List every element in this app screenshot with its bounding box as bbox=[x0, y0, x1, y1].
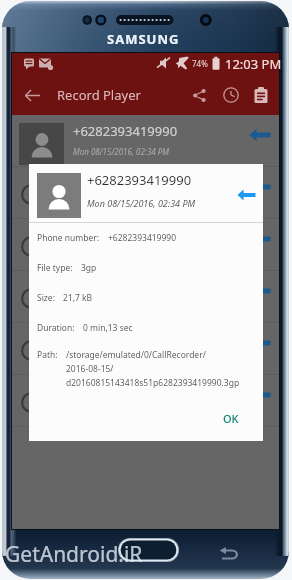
staticText: +6282393419990 bbox=[87, 171, 192, 189]
staticText: Mon 08/15/2016, 02:34 PM bbox=[87, 197, 196, 209]
staticText: 12:03 PM bbox=[225, 55, 282, 73]
button[interactable]: Incoming call bbox=[245, 228, 275, 250]
button[interactable]: Recordings list bbox=[245, 79, 277, 111]
button[interactable]: History bbox=[215, 79, 247, 111]
staticText: Record Player bbox=[57, 86, 141, 104]
staticText: OK bbox=[223, 411, 239, 426]
staticText: Mon 08/15/2016, 02:34 PM bbox=[73, 354, 170, 365]
staticText: /storage/emulated/0/CallRecorder/ bbox=[66, 349, 206, 361]
staticText: +6282393419990 bbox=[73, 174, 178, 192]
staticText: 74% bbox=[192, 58, 208, 69]
button[interactable]: Share bbox=[183, 79, 215, 111]
staticText: Duration: bbox=[37, 322, 75, 334]
staticText: 21,7 kB bbox=[63, 292, 93, 304]
staticText: Size: bbox=[37, 292, 55, 304]
button[interactable]: OK bbox=[211, 403, 251, 434]
button[interactable]: +6282393419990 bbox=[12, 375, 279, 427]
button[interactable]: Back bbox=[15, 78, 49, 112]
staticText: +6282393419990 bbox=[73, 226, 178, 244]
staticText: File type: bbox=[37, 262, 73, 274]
staticText: +6282393419990 bbox=[73, 330, 178, 348]
staticText: Mon 08/15/2016, 02:34 PM bbox=[73, 198, 170, 209]
staticText: GetAndroid.iR bbox=[5, 540, 143, 569]
staticText: +6282393419990 bbox=[73, 122, 178, 140]
staticText: Path: bbox=[37, 349, 58, 361]
button[interactable]: +6282393419990 bbox=[12, 219, 279, 271]
button[interactable]: +6282393419990 bbox=[12, 167, 279, 219]
button[interactable]: Incoming call bbox=[245, 280, 275, 302]
staticText: d20160815143418s51p6282393419990.3gp bbox=[66, 377, 240, 389]
button[interactable]: Incoming call bbox=[245, 124, 275, 146]
button[interactable]: Incoming call bbox=[245, 176, 275, 198]
button[interactable]: Incoming call bbox=[245, 384, 275, 406]
staticText: +6282393419990 bbox=[73, 278, 178, 296]
staticText: +6282393419990 bbox=[73, 382, 178, 400]
staticText: 0 min,13 sec bbox=[83, 322, 133, 334]
staticText: +6282393419990 bbox=[108, 232, 177, 244]
button[interactable]: Incoming call bbox=[245, 332, 275, 354]
button[interactable]: +6282393419990 bbox=[12, 115, 279, 167]
button[interactable]: +6282393419990 bbox=[12, 323, 279, 375]
button[interactable]: +6282393419990 bbox=[12, 271, 279, 323]
staticText: 3gp bbox=[81, 262, 97, 274]
button[interactable]: Incoming call bbox=[231, 184, 262, 206]
staticText: Mon 08/15/2016, 02:34 PM bbox=[73, 146, 170, 157]
staticText: SAMSUNG bbox=[107, 30, 180, 48]
staticText: Phone number: bbox=[37, 232, 100, 244]
staticText: 2016-08-15/ bbox=[66, 363, 114, 375]
